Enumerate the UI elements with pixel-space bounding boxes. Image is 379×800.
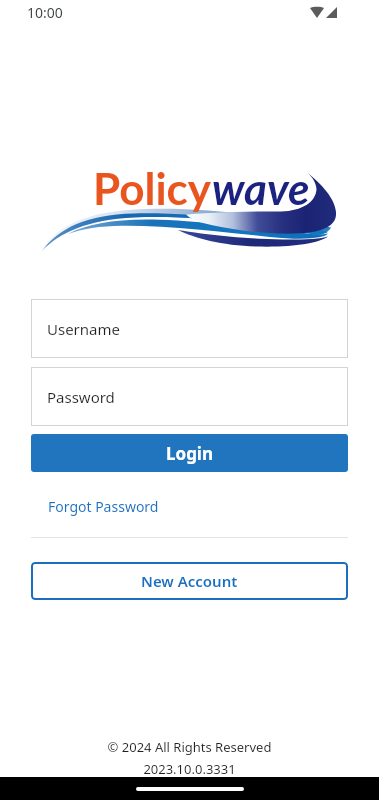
staticText: Policy (93, 162, 212, 215)
staticText: Username (47, 319, 120, 339)
staticText: New Account (141, 571, 238, 591)
button[interactable]: Username (31, 299, 348, 358)
staticText: Forgot Password (48, 497, 159, 516)
staticText: 2023.10.0.3331 (0, 760, 379, 778)
staticText: Password (47, 387, 115, 407)
button[interactable]: Password (31, 367, 348, 426)
other: Wi-Fi (310, 7, 324, 18)
button[interactable]: Forgot Password (31, 496, 159, 517)
staticText: wave (212, 162, 310, 215)
staticText: Login (166, 442, 214, 465)
staticText: © 2024 All Rights Reserved (0, 738, 379, 756)
other: Mobile signal (326, 7, 337, 18)
button[interactable]: Login (31, 434, 348, 472)
button[interactable]: New Account (31, 562, 348, 600)
staticText: 10:00 (27, 3, 63, 22)
